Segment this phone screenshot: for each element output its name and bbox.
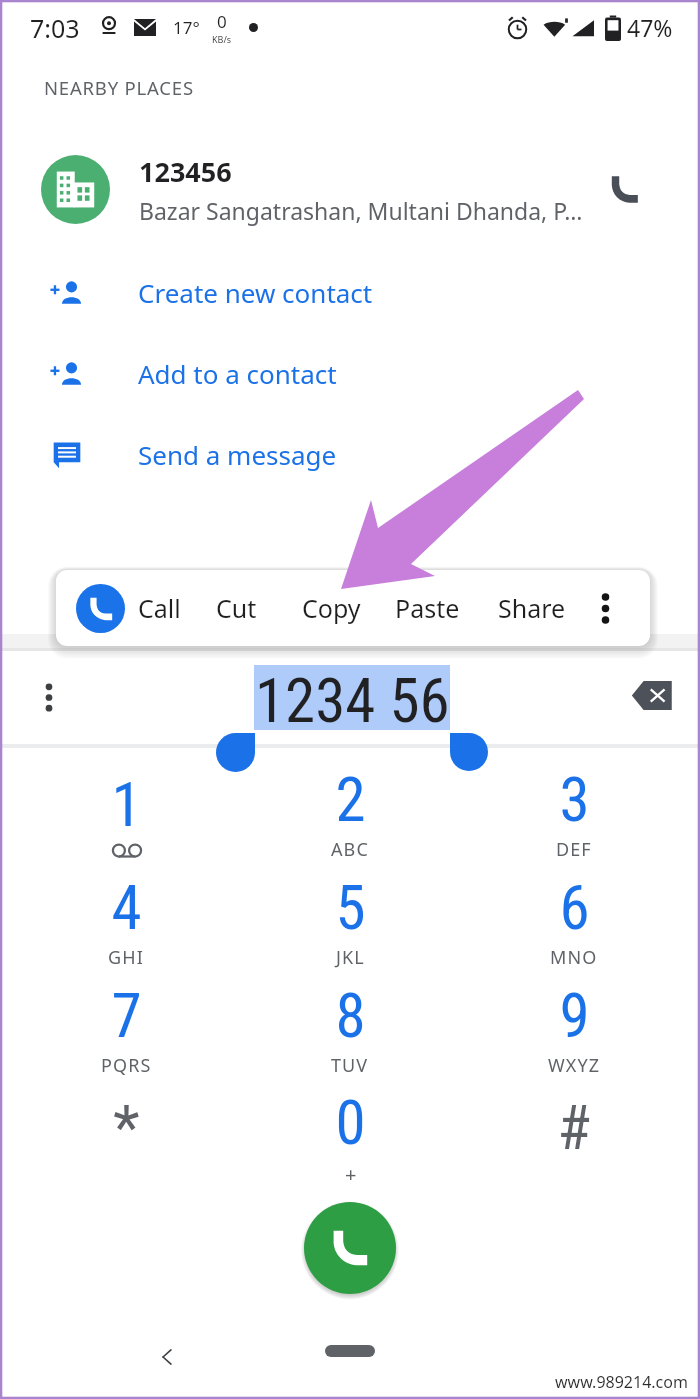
staticText: PQRS [101, 1053, 152, 1078]
staticText: * [113, 1092, 140, 1163]
button[interactable]: # [462, 1072, 686, 1180]
staticText: GHI [108, 945, 144, 970]
button[interactable]: 123456 [0, 146, 700, 232]
button[interactable]: Call [600, 165, 648, 213]
staticText: TUV [331, 1053, 369, 1078]
staticText: Cut [216, 591, 257, 625]
button[interactable]: Backspace [628, 671, 676, 719]
button[interactable]: Cut [216, 591, 257, 625]
button[interactable]: 8 [238, 964, 462, 1072]
staticText: 6 [559, 872, 590, 943]
staticText: Create new contact [138, 275, 373, 310]
button[interactable]: 4 [14, 856, 238, 964]
staticText: Bazar Sangatrashan, Multani Dhanda, P… [139, 195, 583, 226]
button[interactable]: Share [498, 591, 566, 625]
staticText: Paste [395, 591, 460, 625]
button[interactable]: Call [76, 584, 125, 633]
button[interactable]: 7 [14, 964, 238, 1072]
staticText: Add to a contact [138, 356, 337, 391]
button[interactable]: * [14, 1072, 238, 1180]
staticText: + [345, 1161, 357, 1188]
staticText: DEF [556, 837, 592, 862]
staticText: MNO [550, 945, 598, 970]
staticText: 8 [335, 980, 366, 1051]
staticText: WXYZ [548, 1053, 601, 1078]
staticText: www.989214.com [555, 1371, 688, 1393]
staticText: 1234 56 [255, 665, 450, 730]
staticText: 0 [335, 1087, 366, 1158]
staticText: 47% [627, 12, 673, 43]
staticText: 5 [335, 872, 366, 943]
staticText: 7 [111, 980, 142, 1051]
button[interactable]: 2 [238, 748, 462, 856]
button[interactable]: Back [146, 1336, 188, 1378]
staticText: 17° [173, 16, 200, 39]
staticText: 1 [111, 769, 142, 840]
button[interactable]: More options [581, 584, 629, 632]
button[interactable]: 6 [462, 856, 686, 964]
staticText: 7:03 [30, 11, 80, 45]
button[interactable]: Send a message [0, 414, 700, 495]
button[interactable]: Copy [302, 591, 361, 625]
staticText: Call [138, 591, 181, 625]
staticText: NEARBY PLACES [44, 75, 194, 100]
staticText: 3 [559, 764, 590, 835]
staticText: 123456 [139, 153, 232, 190]
button[interactable]: 1 [14, 748, 238, 856]
button[interactable]: Home [325, 1345, 375, 1357]
button[interactable]: Call [304, 1202, 396, 1294]
button[interactable]: Paste [395, 591, 460, 625]
button[interactable]: 0 [238, 1072, 462, 1180]
staticText: ABC [331, 837, 369, 862]
button[interactable]: 5 [238, 856, 462, 964]
staticText: # [557, 1092, 591, 1163]
staticText: 0 [217, 10, 227, 33]
staticText: Copy [302, 591, 361, 625]
staticText: 2 [335, 764, 366, 835]
staticText: JKL [336, 945, 365, 970]
button[interactable]: Call [138, 591, 181, 625]
staticText: 9 [559, 980, 590, 1051]
button[interactable]: 9 [462, 964, 686, 1072]
staticText: 4 [111, 872, 142, 943]
button[interactable]: 3 [462, 748, 686, 856]
staticText: Send a message [138, 437, 337, 472]
staticText: Share [498, 591, 566, 625]
button[interactable]: Overflow menu [28, 676, 70, 718]
button[interactable]: Add to a contact [0, 333, 700, 414]
button[interactable]: Create new contact [0, 252, 700, 333]
staticText: KB/s [212, 33, 232, 45]
